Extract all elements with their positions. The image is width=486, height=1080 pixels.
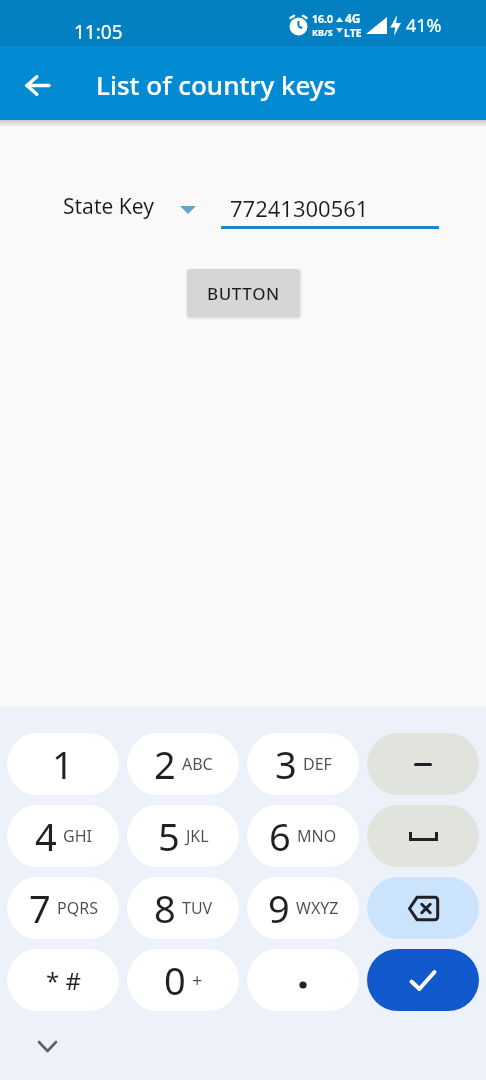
staticText: 5 (158, 810, 180, 862)
staticText: 6 (269, 810, 291, 862)
staticText: 2 (154, 738, 176, 790)
button[interactable]: 1 (7, 733, 119, 795)
staticText: ABC (182, 753, 213, 775)
button[interactable]: * # (7, 949, 119, 1011)
staticText: LTE (344, 26, 362, 40)
staticText: 11:05 (74, 19, 123, 45)
staticText: 41% (406, 13, 442, 38)
staticText: WXYZ (296, 897, 339, 919)
staticText: MNO (297, 825, 337, 847)
staticText: TUV (182, 897, 213, 919)
staticText: 1 (52, 738, 74, 790)
button[interactable]: State Key (63, 192, 196, 221)
staticText: 8 (154, 882, 176, 934)
staticText: 4 (35, 810, 57, 862)
staticText: KB/S (312, 26, 333, 38)
button[interactable]: 8 (127, 877, 239, 939)
staticText: + (192, 968, 203, 993)
staticText: 4G (345, 10, 361, 26)
staticText: * # (46, 964, 81, 997)
button[interactable]: 0 (127, 949, 239, 1011)
button[interactable]: 5 (127, 805, 239, 867)
button[interactable] (367, 733, 479, 795)
staticText: GHI (63, 825, 92, 847)
button[interactable] (16, 63, 60, 107)
button[interactable]: 2 (127, 733, 239, 795)
button[interactable] (367, 877, 479, 939)
staticText: 0 (164, 954, 186, 1006)
staticText: State Key (63, 192, 154, 221)
staticText: 7 (29, 882, 51, 934)
button[interactable] (367, 949, 479, 1011)
staticText: BUTTON (207, 282, 280, 305)
staticText: 3 (275, 738, 297, 790)
button[interactable]: 4 (7, 805, 119, 867)
button[interactable]: BUTTON (187, 269, 300, 317)
staticText: PQRS (57, 897, 98, 919)
button[interactable] (31, 1030, 63, 1062)
button[interactable]: 6 (247, 805, 359, 867)
button[interactable] (367, 805, 479, 867)
staticText: 16.0 (312, 12, 333, 26)
button[interactable]: 9 (247, 877, 359, 939)
button[interactable]: 3 (247, 733, 359, 795)
button[interactable]: 7 (7, 877, 119, 939)
button[interactable] (247, 949, 359, 1011)
staticText: 9 (268, 882, 290, 934)
staticText: 77241300561 (230, 193, 369, 223)
staticText: List of country keys (96, 67, 337, 102)
staticText: JKL (186, 825, 209, 847)
staticText: DEF (303, 753, 332, 775)
